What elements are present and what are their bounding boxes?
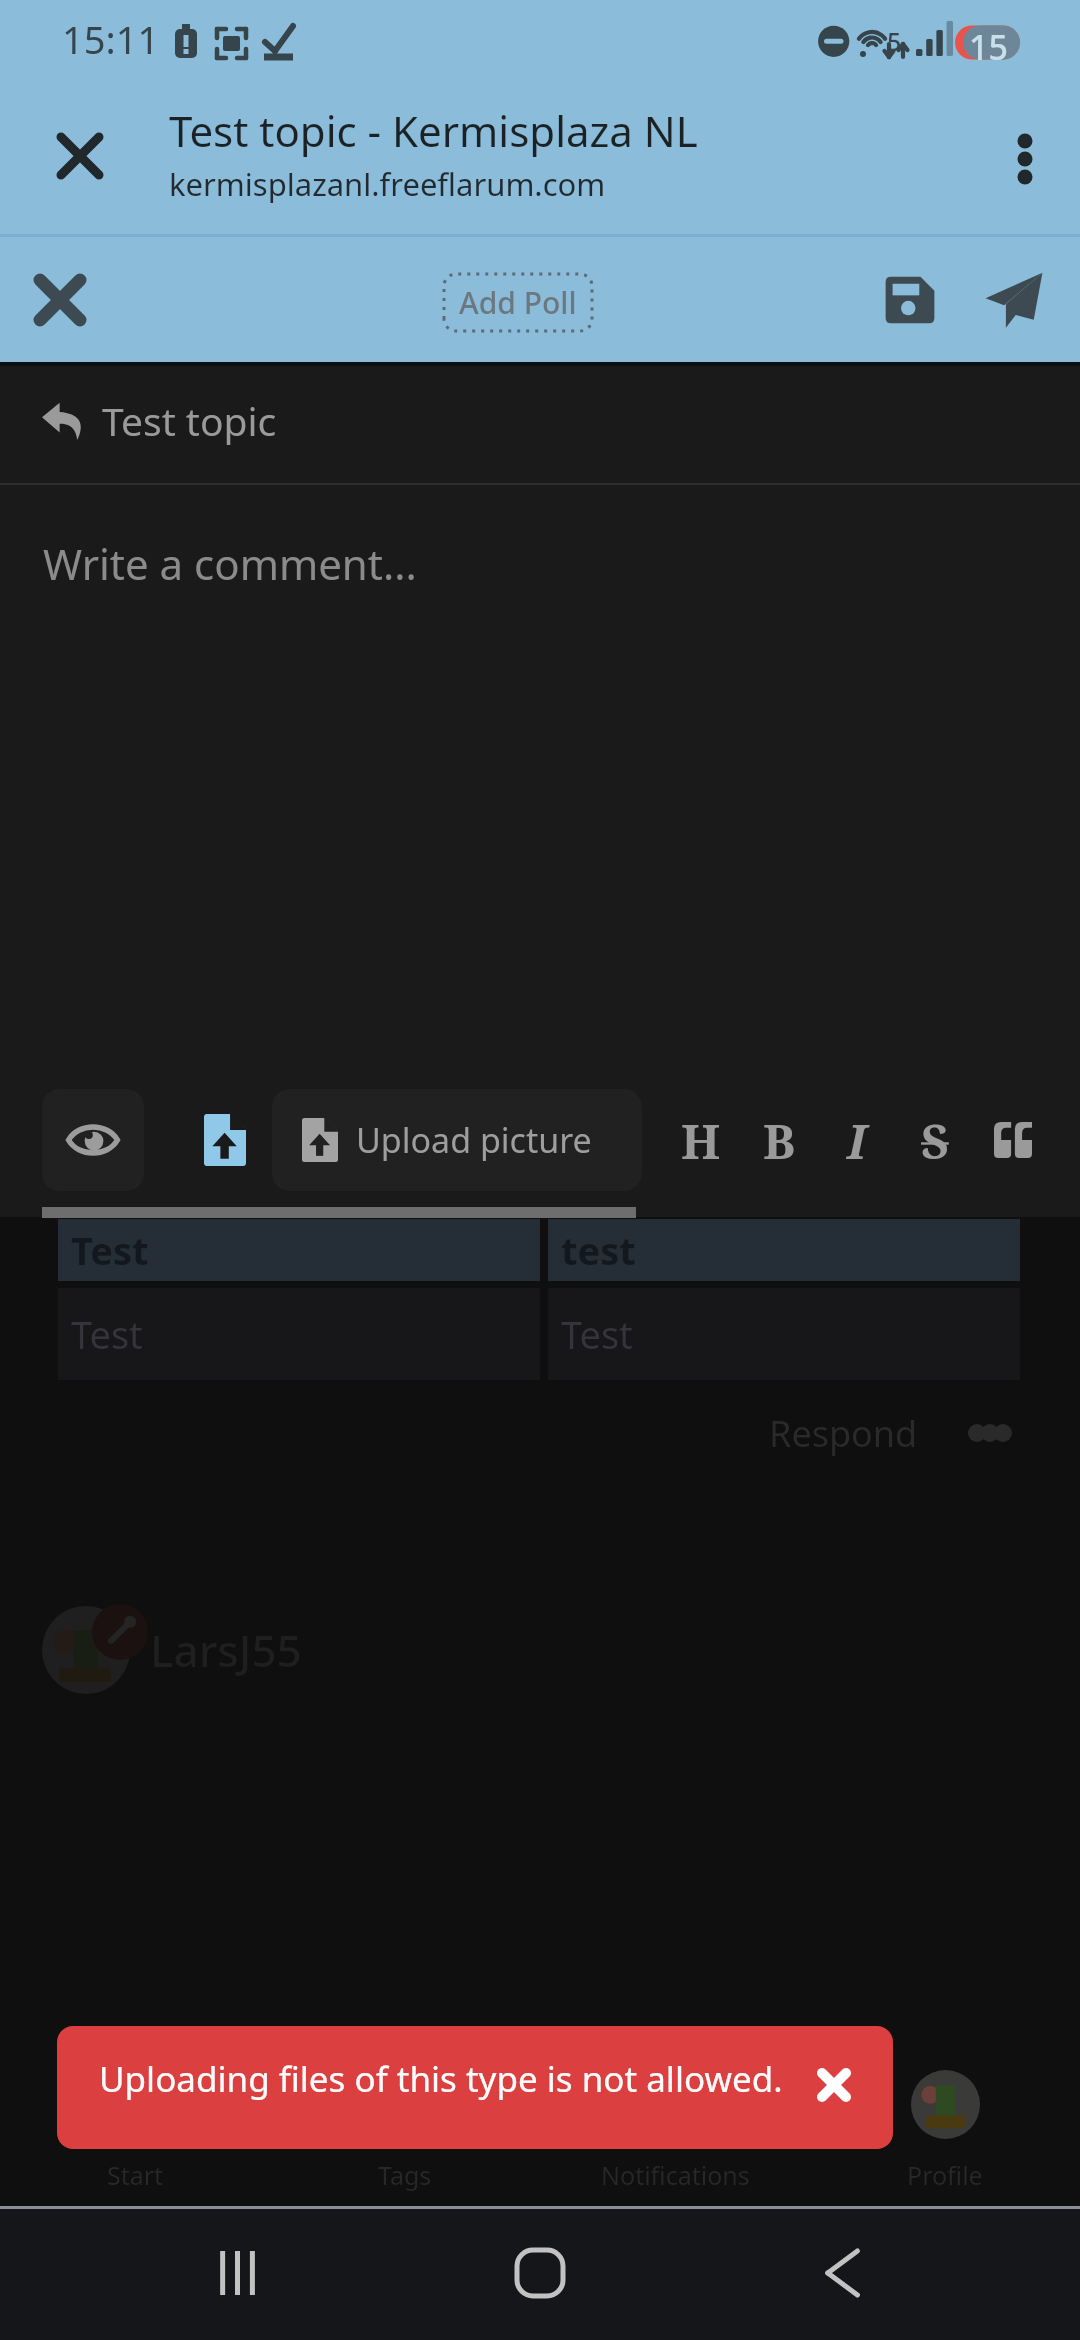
button[interactable]: Upload file	[190, 1105, 260, 1175]
staticText: kermisplazanl.freeflarum.com	[169, 163, 606, 205]
button[interactable]: Quote	[974, 1101, 1052, 1179]
button[interactable]: Profile	[810, 2016, 1080, 2206]
staticText: 5	[887, 24, 902, 58]
staticText: Tags	[378, 2158, 432, 2192]
button[interactable]: Preview	[42, 1089, 144, 1191]
button[interactable]: H	[662, 1101, 740, 1179]
button[interactable]: More options	[970, 84, 1080, 234]
button[interactable]: Respond	[769, 1401, 1012, 1465]
staticText: I	[847, 1108, 867, 1173]
button[interactable]: LarsJ55	[42, 1606, 302, 1694]
staticText: Add Poll	[459, 282, 577, 323]
staticText: Test topic - Kermisplaza NL	[169, 102, 698, 159]
staticText: test	[561, 1224, 636, 1276]
button[interactable]: Save draft	[858, 248, 962, 352]
staticText: Write a comment...	[43, 535, 417, 592]
button[interactable]: Add Poll	[444, 274, 592, 331]
staticText: B	[763, 1108, 796, 1173]
button[interactable]: B	[740, 1101, 818, 1179]
button[interactable]: S	[896, 1101, 974, 1179]
button[interactable]: Uploading files of this type is not allo…	[57, 2026, 893, 2149]
button[interactable]: Back	[778, 2208, 908, 2338]
staticText: S	[921, 1108, 949, 1173]
button[interactable]: Close tab	[0, 84, 170, 234]
button[interactable]: Close composer	[8, 248, 112, 352]
staticText: Test topic	[102, 394, 277, 447]
staticText: LarsJ55	[150, 1620, 302, 1680]
button[interactable]: Dismiss message	[788, 2039, 880, 2131]
staticText: 15:11	[62, 13, 160, 65]
staticText: Uploading files of this type is not allo…	[99, 2055, 783, 2103]
staticText: Notifications	[601, 2158, 750, 2192]
staticText: Test	[71, 1224, 149, 1276]
button[interactable]: Start	[0, 2016, 270, 2206]
button[interactable]: Upload picture	[272, 1089, 642, 1191]
staticText: Upload picture	[356, 1117, 592, 1163]
staticText: Start	[107, 2158, 164, 2192]
staticText: Test	[71, 1308, 143, 1360]
staticText: Test	[561, 1308, 633, 1360]
staticText: H	[681, 1108, 721, 1173]
button[interactable]: Send reply	[962, 248, 1066, 352]
button[interactable]: Notifications	[540, 2016, 810, 2206]
button[interactable]: Recent apps	[173, 2208, 303, 2338]
staticText: Profile	[907, 2158, 983, 2192]
button[interactable]: I	[818, 1101, 896, 1179]
button[interactable]: Tags	[270, 2016, 540, 2206]
staticText: Respond	[769, 1409, 918, 1458]
button[interactable]: Home	[475, 2208, 605, 2338]
staticText: 15	[969, 24, 1008, 70]
